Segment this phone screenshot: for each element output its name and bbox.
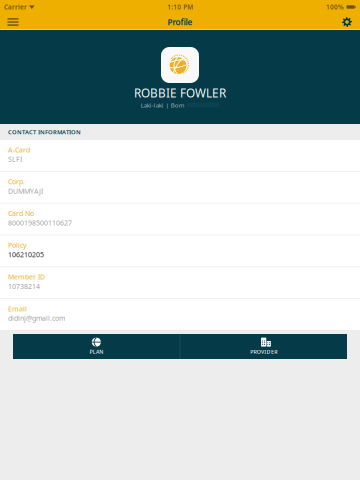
staticText: PLAN [89,348,103,355]
button[interactable]: Menu [0,14,26,30]
staticText: Policy [8,240,27,250]
staticText: Corp. [8,177,25,186]
staticText: 100% [326,3,344,11]
staticText: Email [8,304,27,313]
staticText: PROVIDER [250,348,277,355]
button[interactable]: PROVIDER [180,334,347,359]
staticText: ROBBIE FOWLER [134,85,226,101]
staticText: DUMMYAJI [8,186,43,196]
staticText: CONTACT INFORMATION [8,128,81,136]
staticText: SLFI [8,154,22,164]
staticText: 10738214 [8,282,40,291]
staticText: Laki-laki | Born [141,101,185,109]
staticText: didinj@gmail.com [8,313,65,323]
button[interactable]: PLAN [13,334,180,359]
staticText: 106210205 [8,250,44,259]
staticText: Profile [167,16,192,28]
staticText: Card No [8,209,34,218]
button[interactable]: Settings [334,14,360,30]
staticText: A-Card [8,145,30,154]
staticText: 1:10 PM [167,3,193,11]
staticText: Member ID [8,272,45,282]
staticText: Carrier [4,3,27,11]
staticText: 8000198500110627 [8,218,72,227]
